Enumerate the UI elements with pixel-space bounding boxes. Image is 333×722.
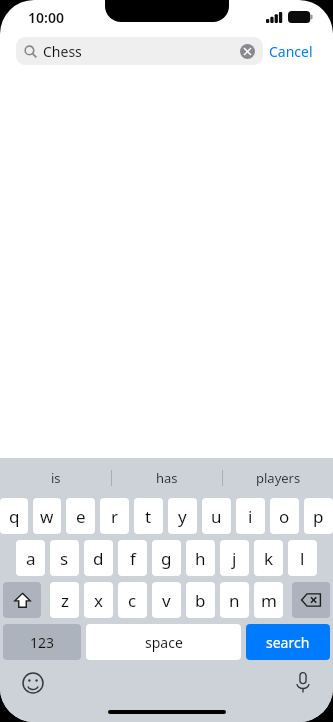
button[interactable]: u bbox=[202, 498, 231, 534]
button[interactable]: z bbox=[50, 582, 79, 618]
button[interactable]: 123 bbox=[3, 624, 81, 660]
button[interactable]: Chess bbox=[16, 37, 263, 65]
button[interactable]: s bbox=[50, 540, 79, 576]
button[interactable]: x bbox=[84, 582, 113, 618]
button[interactable]: search bbox=[246, 624, 330, 660]
staticText: 123 bbox=[30, 633, 55, 652]
staticText: t bbox=[145, 505, 152, 528]
staticText: is bbox=[51, 469, 61, 487]
button[interactable]: e bbox=[66, 498, 95, 534]
staticText: u bbox=[211, 505, 222, 528]
staticText: x bbox=[94, 589, 103, 612]
staticText: search bbox=[266, 633, 310, 652]
staticText: s bbox=[60, 547, 69, 570]
staticText: m bbox=[261, 589, 277, 612]
button[interactable]: f bbox=[118, 540, 147, 576]
staticText: has bbox=[156, 469, 178, 487]
staticText: k bbox=[264, 547, 274, 570]
button[interactable]: Dictation bbox=[295, 672, 311, 694]
button[interactable]: v bbox=[152, 582, 181, 618]
staticText: p bbox=[313, 505, 324, 528]
button[interactable]: h bbox=[186, 540, 215, 576]
button[interactable]: Emoji bbox=[22, 672, 44, 694]
button[interactable]: o bbox=[270, 498, 299, 534]
staticText: c bbox=[128, 589, 137, 612]
staticText: Chess bbox=[43, 42, 240, 61]
button[interactable]: space bbox=[86, 624, 241, 660]
button[interactable]: m bbox=[254, 582, 283, 618]
button[interactable]: Shift bbox=[3, 582, 41, 618]
staticText: b bbox=[195, 589, 206, 612]
staticText: 10:00 bbox=[28, 8, 64, 27]
button[interactable]: a bbox=[16, 540, 45, 576]
button[interactable]: has bbox=[112, 458, 222, 498]
staticText: i bbox=[248, 505, 253, 528]
staticText: f bbox=[130, 547, 136, 570]
staticText: space bbox=[145, 633, 183, 652]
staticText: z bbox=[61, 589, 69, 612]
staticText: q bbox=[9, 505, 20, 528]
staticText: players bbox=[256, 469, 301, 487]
button[interactable]: g bbox=[152, 540, 181, 576]
button[interactable]: j bbox=[220, 540, 249, 576]
staticText: v bbox=[162, 589, 171, 612]
staticText: n bbox=[229, 589, 240, 612]
button[interactable]: is bbox=[0, 458, 111, 498]
staticText: r bbox=[111, 505, 119, 528]
button[interactable]: players bbox=[223, 458, 333, 498]
button[interactable]: p bbox=[304, 498, 333, 534]
staticText: Cancel bbox=[269, 42, 313, 61]
button[interactable]: b bbox=[186, 582, 215, 618]
staticText: y bbox=[178, 505, 187, 528]
staticText: g bbox=[161, 547, 172, 570]
button[interactable]: y bbox=[168, 498, 197, 534]
button[interactable]: t bbox=[134, 498, 163, 534]
button[interactable]: Backspace bbox=[292, 582, 330, 618]
button[interactable]: c bbox=[118, 582, 147, 618]
button[interactable]: q bbox=[0, 498, 28, 534]
button[interactable]: Cancel bbox=[263, 38, 319, 65]
staticText: e bbox=[76, 505, 86, 528]
staticText: j bbox=[232, 547, 237, 570]
staticText: a bbox=[26, 547, 36, 570]
staticText: d bbox=[93, 547, 104, 570]
button[interactable]: k bbox=[254, 540, 283, 576]
button[interactable]: w bbox=[33, 498, 61, 534]
button[interactable]: Clear text bbox=[240, 44, 255, 59]
staticText: w bbox=[40, 505, 54, 528]
staticText: o bbox=[279, 505, 290, 528]
button[interactable]: d bbox=[84, 540, 113, 576]
button[interactable]: r bbox=[100, 498, 129, 534]
button[interactable]: l bbox=[288, 540, 317, 576]
staticText: h bbox=[195, 547, 206, 570]
button[interactable]: n bbox=[220, 582, 249, 618]
staticText: l bbox=[300, 547, 305, 570]
button[interactable]: i bbox=[236, 498, 265, 534]
